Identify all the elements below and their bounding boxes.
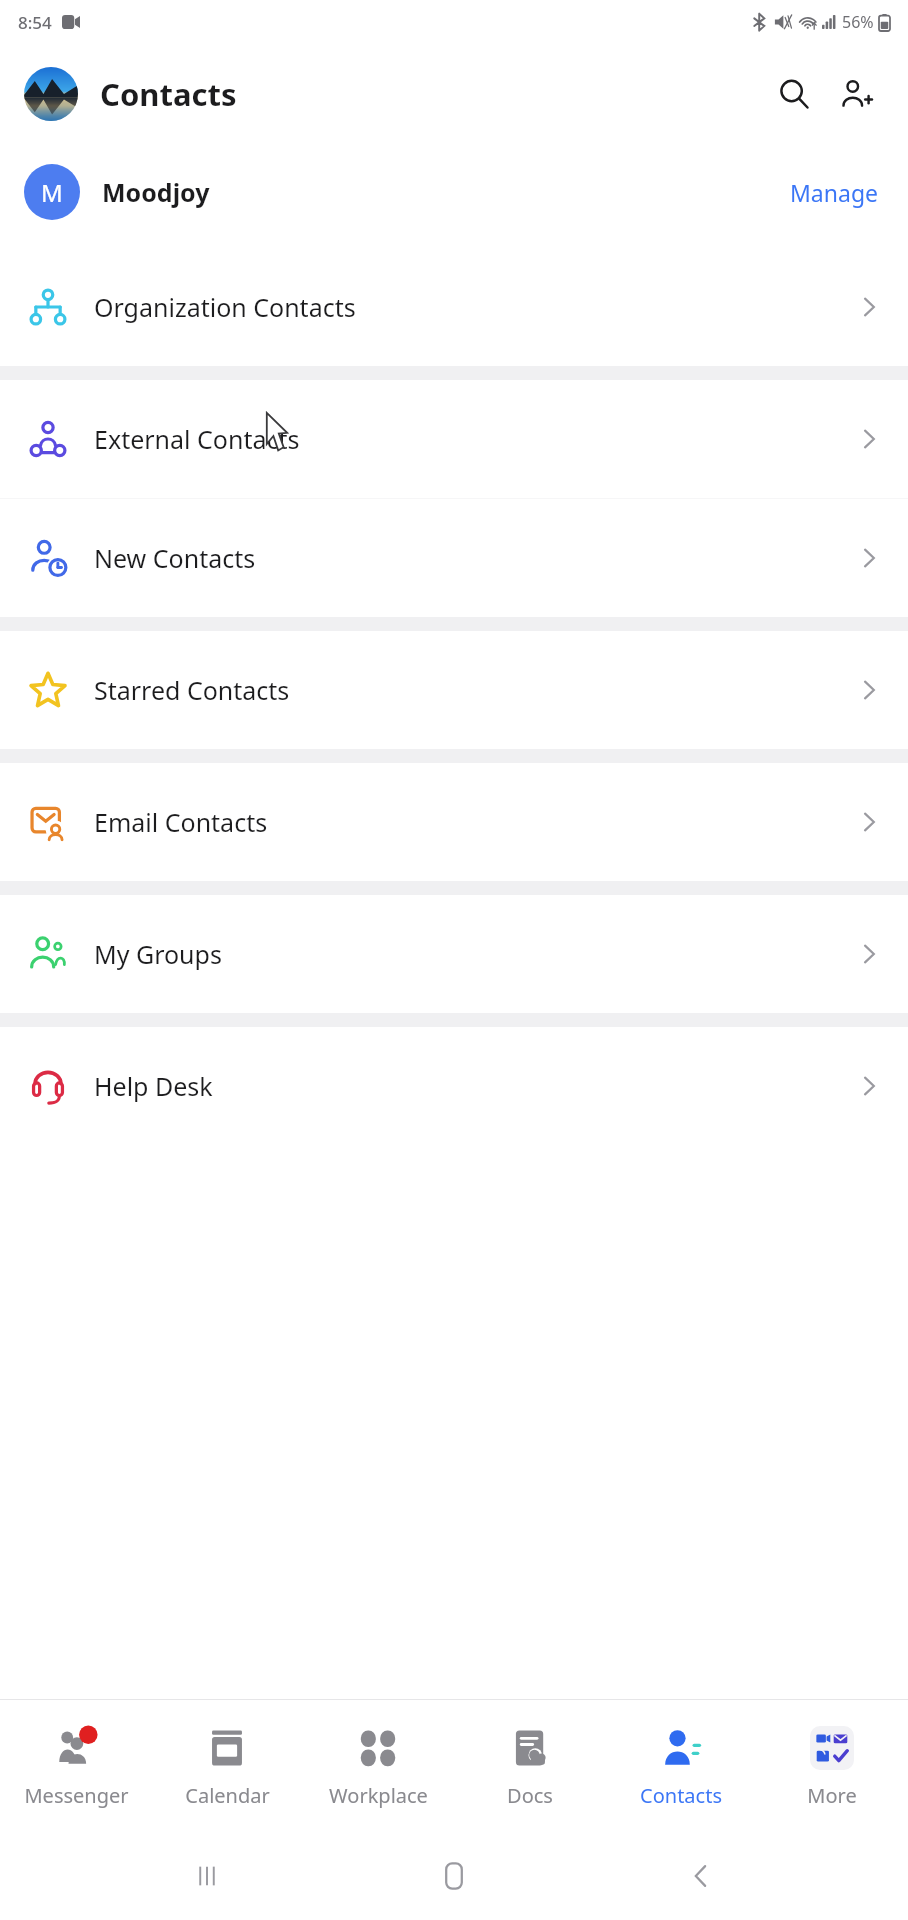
staticText: M <box>41 176 63 209</box>
staticText: Starred Contacts <box>94 673 290 707</box>
staticText: Email Contacts <box>94 805 268 839</box>
button[interactable]: Calendar <box>152 1718 302 1815</box>
button[interactable]: More <box>757 1718 907 1815</box>
staticText: 8:54 <box>18 11 52 34</box>
button[interactable]: Workplace <box>303 1718 453 1815</box>
button[interactable]: Contacts <box>606 1718 756 1815</box>
button[interactable]: Profile <box>24 67 78 121</box>
button[interactable]: Search <box>766 66 822 122</box>
button[interactable]: Add contact <box>828 66 884 122</box>
button[interactable]: Home <box>414 1836 494 1916</box>
staticText: Manage <box>790 177 878 208</box>
button[interactable]: Recent apps <box>167 1836 247 1916</box>
staticText: 56% <box>842 11 874 33</box>
staticText: New Contacts <box>94 541 256 575</box>
staticText: Calendar <box>185 1782 270 1809</box>
staticText: Help Desk <box>94 1069 213 1103</box>
button[interactable]: Help Desk <box>0 1027 908 1145</box>
staticText: Contacts <box>640 1782 722 1809</box>
button[interactable]: External Contacts <box>0 380 908 498</box>
button[interactable]: New Contacts <box>0 499 908 617</box>
staticText: External Contacts <box>94 422 300 456</box>
button[interactable]: Messenger <box>1 1718 151 1815</box>
button[interactable]: Back <box>661 1836 741 1916</box>
staticText: Organization Contacts <box>94 290 356 324</box>
staticText: Moodjoy <box>102 175 210 209</box>
staticText: My Groups <box>94 937 222 971</box>
button[interactable]: M <box>0 144 908 240</box>
button[interactable]: Email Contacts <box>0 763 908 881</box>
button[interactable]: Docs <box>455 1718 605 1815</box>
staticText: Messenger <box>24 1782 129 1809</box>
staticText: Workplace <box>329 1782 428 1809</box>
staticText: Docs <box>507 1782 553 1809</box>
staticText: More <box>807 1782 857 1809</box>
staticText: Contacts <box>100 73 237 115</box>
button[interactable]: Organization Contacts <box>0 248 908 366</box>
button[interactable]: Manage <box>784 171 884 214</box>
button[interactable]: Starred Contacts <box>0 631 908 749</box>
button[interactable]: My Groups <box>0 895 908 1013</box>
